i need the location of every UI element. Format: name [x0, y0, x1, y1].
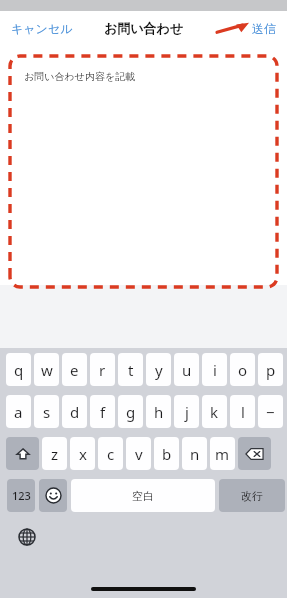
button[interactable]: x	[70, 437, 95, 470]
staticText: 空白	[132, 489, 154, 503]
staticText: u	[182, 360, 192, 380]
staticText: 123	[12, 488, 31, 503]
button[interactable]: q	[6, 353, 31, 386]
button[interactable]: a	[6, 395, 31, 428]
staticText: a	[14, 402, 23, 422]
button[interactable]: d	[62, 395, 87, 428]
button[interactable]: o	[230, 353, 255, 386]
staticText: j	[185, 402, 189, 422]
staticText: w	[41, 360, 53, 380]
staticText: e	[70, 360, 79, 380]
button[interactable]: Shift	[6, 437, 39, 470]
button[interactable]: v	[126, 437, 151, 470]
button[interactable]: b	[154, 437, 179, 470]
staticText: 送信	[252, 21, 276, 36]
staticText: −	[266, 402, 275, 422]
button[interactable]: y	[146, 353, 171, 386]
staticText: k	[210, 402, 219, 422]
button[interactable]: 改行	[219, 479, 285, 512]
staticText: q	[14, 360, 24, 380]
staticText: h	[154, 402, 164, 422]
staticText: g	[126, 402, 136, 422]
button[interactable]: i	[202, 353, 227, 386]
button[interactable]: n	[182, 437, 207, 470]
button[interactable]: キャンセル	[8, 17, 76, 40]
staticText: o	[238, 360, 248, 380]
button[interactable]: Switch keyboard	[14, 524, 40, 550]
button[interactable]: c	[98, 437, 123, 470]
staticText: l	[241, 402, 245, 422]
button[interactable]: h	[146, 395, 171, 428]
button[interactable]: w	[34, 353, 59, 386]
staticText: z	[51, 444, 59, 464]
button[interactable]: l	[230, 395, 255, 428]
button[interactable]: u	[174, 353, 199, 386]
button[interactable]: 送信	[249, 17, 279, 40]
button[interactable]: f	[90, 395, 115, 428]
staticText: s	[43, 402, 51, 422]
staticText: n	[190, 444, 200, 464]
button[interactable]: Emoji	[39, 479, 67, 512]
staticText: y	[155, 360, 163, 380]
button[interactable]: j	[174, 395, 199, 428]
staticText: v	[135, 444, 143, 464]
staticText: r	[99, 360, 106, 380]
staticText: m	[215, 444, 230, 464]
staticText: d	[70, 402, 80, 422]
staticText: b	[162, 444, 172, 464]
staticText: お問い合わせ内容を記載	[24, 70, 136, 83]
button[interactable]: k	[202, 395, 227, 428]
staticText: お問い合わせ	[104, 20, 184, 36]
button[interactable]: s	[34, 395, 59, 428]
button[interactable]: g	[118, 395, 143, 428]
button[interactable]: −	[258, 395, 283, 428]
staticText: x	[79, 444, 87, 464]
staticText: p	[266, 360, 276, 380]
staticText: 改行	[241, 489, 263, 503]
button[interactable]: r	[90, 353, 115, 386]
button[interactable]: t	[118, 353, 143, 386]
button[interactable]: Delete	[238, 437, 271, 470]
button[interactable]: p	[258, 353, 283, 386]
staticText: f	[100, 402, 106, 422]
staticText: t	[128, 360, 134, 380]
staticText: c	[107, 444, 115, 464]
button[interactable]: z	[42, 437, 67, 470]
button[interactable]: 空白	[71, 479, 215, 512]
button[interactable]: m	[210, 437, 235, 470]
staticText: キャンセル	[11, 21, 73, 36]
button[interactable]: e	[62, 353, 87, 386]
staticText: i	[213, 360, 217, 380]
button[interactable]: 123	[7, 479, 35, 512]
